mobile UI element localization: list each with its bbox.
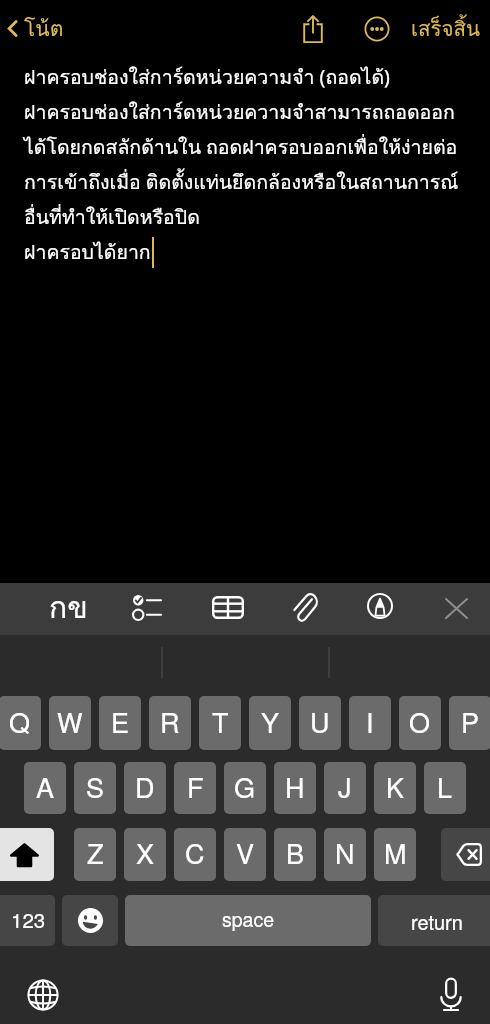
staticText: กข: [49, 584, 88, 632]
button[interactable]: Share: [291, 7, 335, 51]
button[interactable]: J: [324, 762, 366, 814]
staticText: ฝาครอบช่องใส่การ์ดหน่วยความจำ (ถอดได้): [24, 62, 390, 93]
button[interactable]: เสร็จสิ้น: [405, 4, 487, 53]
other: Back: [6, 16, 19, 41]
button[interactable]: Close keyboard: [430, 582, 482, 634]
button[interactable]: Y: [249, 696, 291, 750]
staticText: S: [86, 767, 105, 806]
button[interactable]: A: [24, 762, 66, 814]
staticText: C: [185, 833, 205, 872]
button[interactable]: Backspace: [441, 828, 490, 881]
staticText: J: [338, 767, 352, 806]
button[interactable]: Table: [202, 581, 254, 633]
button[interactable]: Markup: [354, 580, 406, 632]
staticText: N: [335, 833, 355, 872]
button[interactable]: M: [374, 828, 416, 881]
button[interactable]: D: [124, 762, 166, 814]
staticText: Z: [87, 833, 104, 872]
staticText: B: [286, 833, 305, 872]
button[interactable]: G: [224, 762, 266, 814]
staticText: Y: [261, 702, 280, 741]
staticText: A: [36, 767, 55, 806]
staticText: space: [222, 905, 275, 933]
staticText: V: [236, 833, 255, 872]
staticText: return: [411, 907, 463, 936]
staticText: ฝาครอบได้ยาก: [24, 237, 151, 268]
button[interactable]: I: [349, 696, 391, 750]
button[interactable]: P: [449, 696, 490, 750]
staticText: W: [57, 702, 83, 741]
staticText: โน้ต: [24, 12, 64, 45]
staticText: L: [437, 767, 453, 806]
staticText: P: [461, 702, 480, 741]
button[interactable]: X: [124, 828, 166, 881]
staticText: F: [187, 767, 204, 806]
button[interactable]: T: [199, 696, 241, 750]
staticText: การเข้าถึงเมื่อ ติดตั้งแท่นยึดกล้องหรือใ…: [24, 167, 459, 198]
button[interactable]: H: [274, 762, 316, 814]
button[interactable]: Emoji: [62, 895, 118, 946]
button[interactable]: Back: [6, 12, 64, 45]
button[interactable]: Checklist: [121, 581, 173, 633]
staticText: อื่นที่ทำให้เปิดหรือปิด: [24, 202, 200, 233]
button[interactable]: Shift: [0, 828, 54, 881]
button[interactable]: F: [174, 762, 216, 814]
staticText: R: [160, 702, 180, 741]
button[interactable]: 123: [0, 895, 55, 946]
button[interactable]: Dictate: [429, 972, 473, 1016]
staticText: O: [409, 702, 431, 741]
staticText: เสร็จสิ้น: [411, 12, 481, 45]
button[interactable]: More options: [357, 9, 397, 49]
button[interactable]: K: [374, 762, 416, 814]
button[interactable]: กข: [42, 582, 94, 634]
button[interactable]: S: [74, 762, 116, 814]
staticText: ฝาครอบช่องใส่การ์ดหน่วยความจำสามารถถอดออ…: [24, 97, 455, 128]
staticText: D: [135, 767, 155, 806]
button[interactable]: C: [174, 828, 216, 881]
staticText: H: [285, 767, 305, 806]
staticText: K: [386, 767, 405, 806]
button[interactable]: E: [99, 696, 141, 750]
button[interactable]: R: [149, 696, 191, 750]
staticText: U: [310, 702, 330, 741]
staticText: T: [212, 702, 229, 741]
button[interactable]: U: [299, 696, 341, 750]
button[interactable]: N: [324, 828, 366, 881]
staticText: G: [234, 767, 256, 806]
button[interactable]: Attach file: [278, 580, 330, 632]
staticText: E: [111, 702, 130, 741]
button[interactable]: O: [399, 696, 441, 750]
button[interactable]: W: [49, 696, 91, 750]
button[interactable]: L: [424, 762, 466, 814]
staticText: ได้โดยกดสลักด้านใน ถอดฝาครอบออกเพื่อให้ง…: [24, 132, 458, 163]
button[interactable]: Q: [0, 696, 41, 750]
button[interactable]: V: [224, 828, 266, 881]
button[interactable]: space: [125, 895, 371, 946]
button[interactable]: B: [274, 828, 316, 881]
staticText: 123: [11, 904, 46, 933]
staticText: M: [384, 833, 407, 872]
staticText: Q: [9, 702, 31, 741]
button[interactable]: Z: [74, 828, 116, 881]
button[interactable]: return: [378, 895, 490, 946]
staticText: X: [136, 833, 155, 872]
button[interactable]: Switch keyboard: [21, 973, 65, 1017]
staticText: I: [366, 702, 374, 741]
